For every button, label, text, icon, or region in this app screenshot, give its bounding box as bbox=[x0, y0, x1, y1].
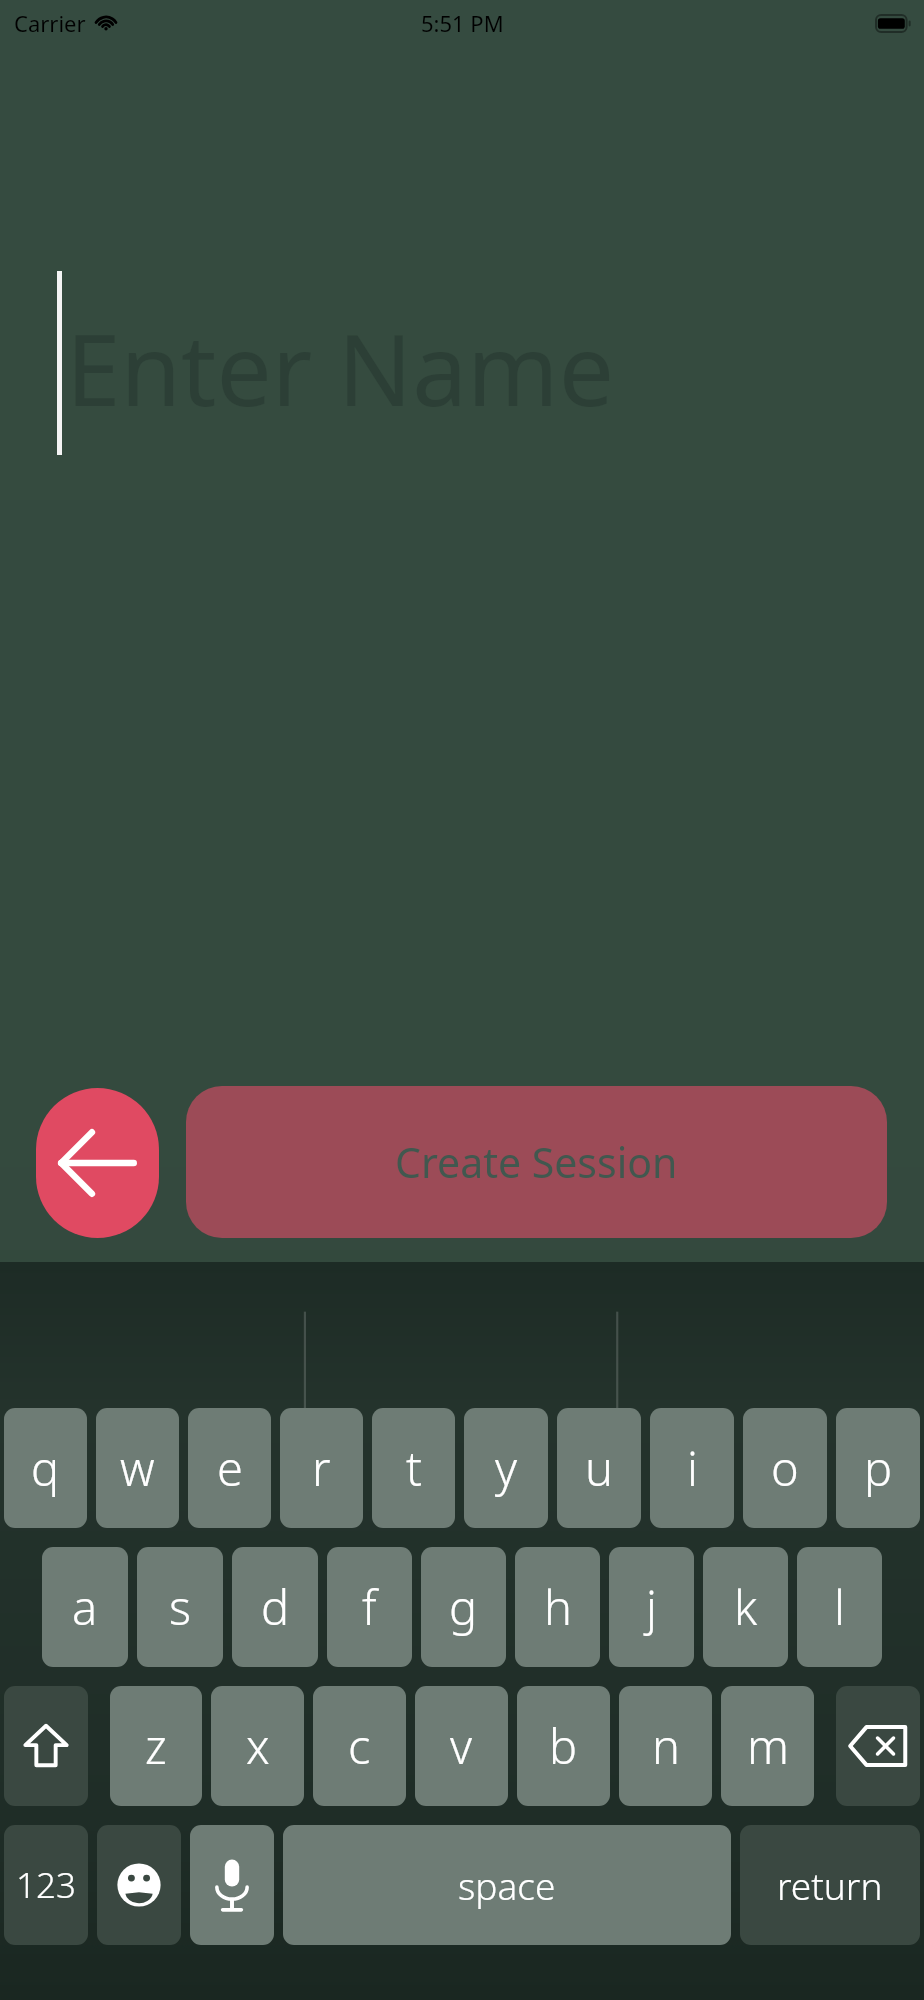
staticText: f bbox=[362, 1575, 377, 1639]
staticText: Carrier bbox=[14, 8, 86, 38]
staticText: k bbox=[734, 1575, 758, 1639]
button[interactable]: Emoji bbox=[97, 1825, 181, 1945]
staticText: z bbox=[145, 1714, 167, 1778]
button[interactable]: return bbox=[740, 1825, 920, 1945]
staticText: Create Session bbox=[395, 1134, 678, 1190]
button[interactable]: o bbox=[743, 1408, 827, 1528]
staticText: l bbox=[834, 1575, 845, 1639]
staticText: s bbox=[169, 1575, 191, 1639]
staticText: u bbox=[585, 1436, 613, 1500]
button[interactable]: k bbox=[703, 1547, 788, 1667]
staticText: o bbox=[771, 1436, 799, 1500]
staticText: x bbox=[246, 1714, 270, 1778]
button[interactable]: n bbox=[619, 1686, 712, 1806]
staticText: v bbox=[450, 1714, 473, 1778]
button[interactable]: x bbox=[211, 1686, 304, 1806]
staticText: e bbox=[217, 1436, 243, 1500]
staticText: p bbox=[864, 1436, 893, 1500]
button[interactable]: q bbox=[4, 1408, 87, 1528]
button[interactable]: Create Session bbox=[186, 1086, 887, 1238]
button[interactable]: s bbox=[137, 1547, 223, 1667]
button[interactable]: Back bbox=[36, 1088, 159, 1238]
staticText: m bbox=[747, 1714, 789, 1778]
staticText: h bbox=[544, 1575, 572, 1639]
staticText: a bbox=[72, 1575, 98, 1639]
staticText: n bbox=[652, 1714, 680, 1778]
button[interactable]: b bbox=[517, 1686, 610, 1806]
staticText: Enter Name bbox=[66, 301, 615, 434]
button[interactable]: i bbox=[650, 1408, 734, 1528]
button[interactable]: t bbox=[372, 1408, 455, 1528]
staticText: return bbox=[777, 1860, 883, 1910]
button[interactable]: m bbox=[721, 1686, 814, 1806]
button[interactable]: p bbox=[836, 1408, 920, 1528]
staticText: q bbox=[31, 1436, 60, 1500]
staticText: t bbox=[406, 1436, 422, 1500]
staticText: 123 bbox=[16, 1861, 76, 1909]
staticText: 5:51 PM bbox=[421, 8, 504, 38]
button[interactable]: v bbox=[415, 1686, 508, 1806]
staticText: j bbox=[646, 1575, 657, 1639]
staticText: space bbox=[458, 1860, 556, 1910]
button[interactable]: d bbox=[232, 1547, 318, 1667]
staticText: g bbox=[449, 1575, 478, 1639]
button[interactable]: space bbox=[283, 1825, 731, 1945]
staticText: c bbox=[348, 1714, 371, 1778]
button[interactable]: u bbox=[557, 1408, 641, 1528]
button[interactable]: Dictation bbox=[190, 1825, 274, 1945]
button[interactable]: w bbox=[96, 1408, 179, 1528]
button[interactable]: c bbox=[313, 1686, 406, 1806]
button[interactable]: f bbox=[327, 1547, 412, 1667]
button[interactable]: Backspace bbox=[836, 1686, 920, 1806]
button[interactable]: e bbox=[188, 1408, 271, 1528]
button[interactable]: r bbox=[280, 1408, 363, 1528]
staticText: b bbox=[549, 1714, 578, 1778]
button[interactable]: j bbox=[609, 1547, 694, 1667]
staticText: i bbox=[687, 1436, 698, 1500]
button[interactable]: y bbox=[464, 1408, 548, 1528]
button[interactable]: g bbox=[421, 1547, 506, 1667]
staticText: r bbox=[312, 1436, 331, 1500]
staticText: w bbox=[120, 1436, 155, 1500]
staticText: y bbox=[495, 1436, 518, 1500]
button[interactable]: a bbox=[42, 1547, 128, 1667]
button[interactable]: h bbox=[515, 1547, 600, 1667]
staticText: d bbox=[261, 1575, 290, 1639]
button[interactable]: 123 bbox=[4, 1825, 88, 1945]
button[interactable]: l bbox=[797, 1547, 882, 1667]
button[interactable]: z bbox=[110, 1686, 202, 1806]
button[interactable]: Shift bbox=[4, 1686, 88, 1806]
